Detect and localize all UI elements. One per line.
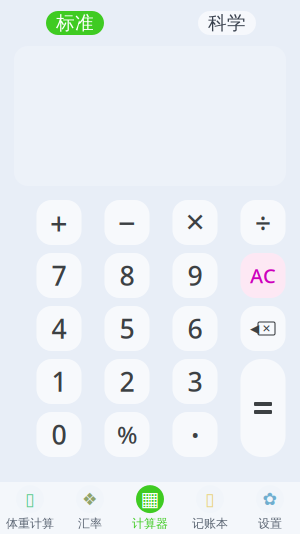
staticText: 科学	[208, 11, 246, 34]
button[interactable]: ✕	[172, 200, 217, 245]
staticText: 5	[119, 311, 134, 346]
button[interactable]: 9	[172, 253, 217, 298]
staticText: 1	[51, 364, 66, 399]
button[interactable]: Equals	[240, 359, 285, 457]
staticText: 0	[51, 417, 66, 452]
staticText: 8	[119, 258, 134, 293]
staticText: 4	[51, 311, 66, 346]
staticText: 汇率	[78, 516, 102, 531]
staticText: AC	[250, 262, 276, 289]
staticText: +	[50, 202, 68, 243]
button[interactable]: 2	[104, 359, 149, 404]
staticText: 3	[187, 364, 202, 399]
button[interactable]: ·	[172, 412, 217, 457]
staticText: ▯	[25, 489, 35, 509]
staticText: ◀	[250, 322, 259, 335]
staticText: 记账本	[192, 516, 228, 531]
button[interactable]: 6	[172, 306, 217, 351]
staticText: 设置	[258, 516, 282, 531]
button[interactable]: 标准	[46, 11, 104, 35]
staticText: 计算器	[132, 516, 168, 531]
staticText: −	[118, 202, 136, 243]
button[interactable]: %	[104, 412, 149, 457]
staticText: 体重计算	[6, 516, 54, 531]
button[interactable]: 3	[172, 359, 217, 404]
button[interactable]: 5	[104, 306, 149, 351]
staticText: ✕	[262, 322, 271, 334]
button[interactable]: 科学	[198, 11, 256, 35]
staticText: 标准	[56, 11, 94, 34]
staticText: %	[117, 419, 137, 450]
button[interactable]: ▦	[120, 485, 180, 531]
staticText: ▯	[205, 489, 215, 509]
button[interactable]: ▯	[180, 485, 240, 531]
button[interactable]: ❖	[60, 485, 120, 531]
button[interactable]: AC	[240, 253, 285, 298]
staticText: ✕	[184, 208, 205, 237]
button[interactable]: 8	[104, 253, 149, 298]
staticText: ❖	[82, 489, 98, 509]
button[interactable]: ÷	[240, 200, 285, 245]
staticText: 6	[187, 311, 202, 346]
staticText: 7	[51, 258, 66, 293]
button[interactable]: ▯	[0, 485, 60, 531]
button[interactable]: +	[36, 200, 81, 245]
button[interactable]: Backspace	[240, 306, 285, 351]
button[interactable]: −	[104, 200, 149, 245]
staticText: ▦	[140, 488, 159, 510]
staticText: 9	[187, 258, 202, 293]
staticText: 2	[119, 364, 134, 399]
button[interactable]: 1	[36, 359, 81, 404]
button[interactable]: 0	[36, 412, 81, 457]
staticText: ✿	[262, 489, 277, 509]
button[interactable]: 4	[36, 306, 81, 351]
staticText: ·	[190, 411, 199, 457]
button[interactable]: 7	[36, 253, 81, 298]
staticText: ÷	[255, 204, 271, 241]
button[interactable]: ✿	[240, 485, 300, 531]
